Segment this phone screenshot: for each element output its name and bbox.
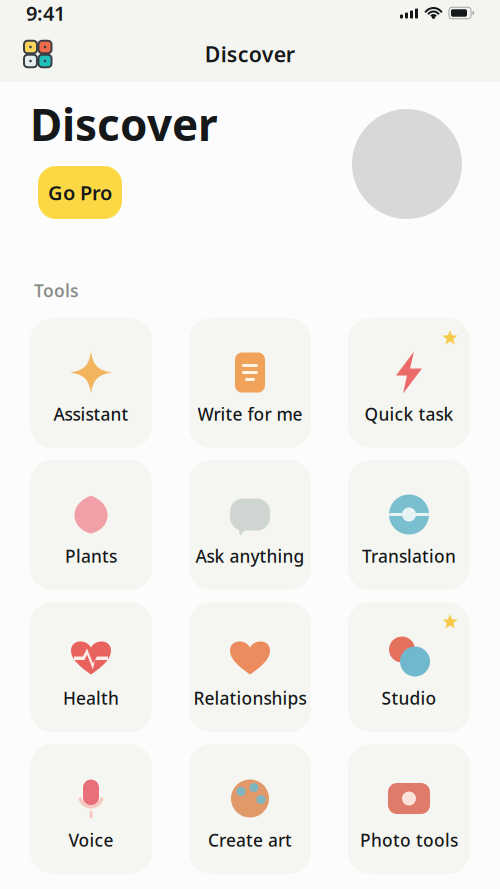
staticText: Discover: [205, 40, 295, 68]
staticText: Ask anything: [195, 544, 304, 567]
staticText: Relationships: [193, 686, 306, 709]
staticText: Assistant: [53, 402, 128, 425]
button[interactable]: Relationships: [189, 602, 311, 732]
staticText: Plants: [65, 544, 117, 567]
button[interactable]: Photo tools: [348, 744, 470, 874]
button[interactable]: Ask anything: [189, 460, 311, 590]
button[interactable]: Quick task: [348, 318, 470, 448]
staticText: 9:41: [26, 0, 65, 26]
button[interactable]: Voice: [30, 744, 152, 874]
button[interactable]: Create art: [189, 744, 311, 874]
staticText: Discover: [30, 95, 218, 153]
staticText: Create art: [208, 828, 292, 851]
staticText: Voice: [68, 828, 113, 851]
staticText: Write for me: [197, 402, 302, 425]
staticText: Photo tools: [360, 828, 458, 851]
staticText: Health: [63, 686, 119, 709]
button[interactable]: Translation: [348, 460, 470, 590]
button[interactable]: Profile: [352, 109, 462, 219]
button[interactable]: Studio: [348, 602, 470, 732]
button[interactable]: Home: [24, 41, 51, 67]
button[interactable]: Write for me: [189, 318, 311, 448]
button[interactable]: Assistant: [30, 318, 152, 448]
button[interactable]: Health: [30, 602, 152, 732]
button[interactable]: Plants: [30, 460, 152, 590]
staticText: Translation: [362, 544, 456, 567]
staticText: Tools: [34, 279, 79, 302]
staticText: Studio: [381, 686, 436, 709]
button[interactable]: Go Pro: [38, 166, 122, 219]
staticText: Go Pro: [48, 179, 112, 206]
staticText: Quick task: [364, 402, 453, 425]
